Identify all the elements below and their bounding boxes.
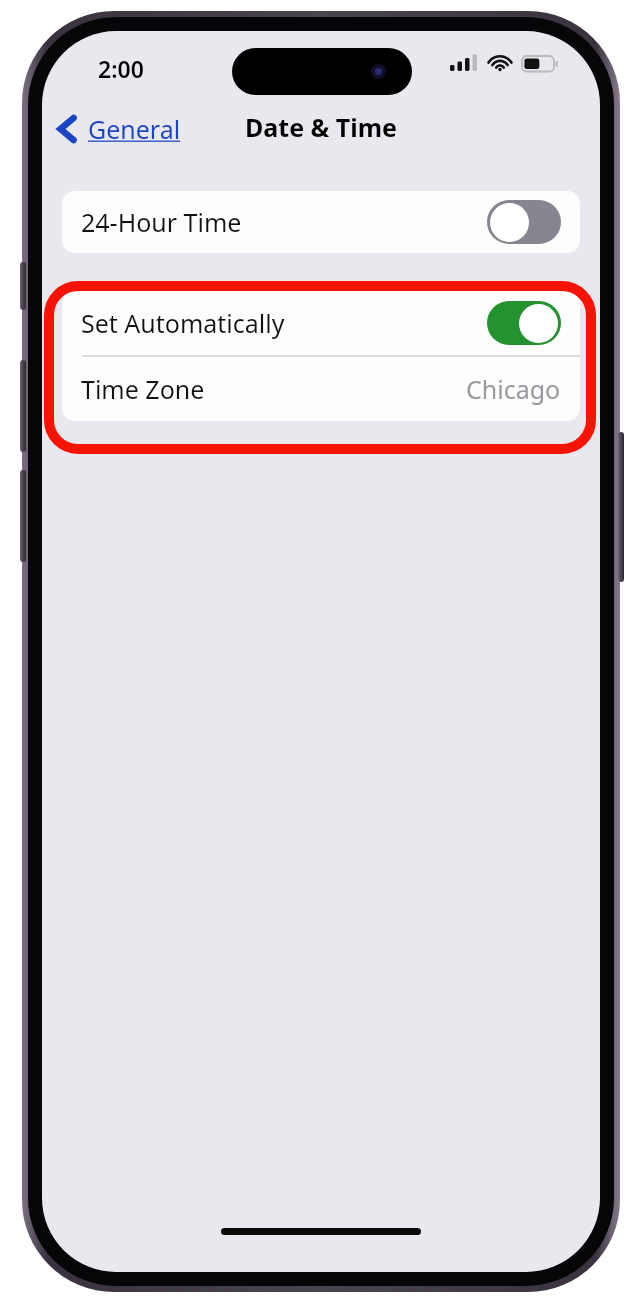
staticText: Date & Time [245, 110, 398, 144]
staticText: Set Automatically [81, 306, 285, 340]
button[interactable]: Off [487, 200, 561, 244]
button[interactable]: Time Zone [62, 357, 580, 421]
staticText: Time Zone [81, 372, 205, 406]
staticText: 24-Hour Time [81, 205, 242, 239]
staticText: 2:00 [98, 53, 144, 84]
button[interactable]: General [48, 105, 189, 153]
button[interactable]: On [487, 301, 561, 345]
button[interactable]: 24-Hour Time [62, 191, 580, 253]
button[interactable]: Set Automatically [62, 291, 580, 355]
staticText: General [88, 112, 181, 146]
staticText: Chicago [466, 372, 561, 406]
